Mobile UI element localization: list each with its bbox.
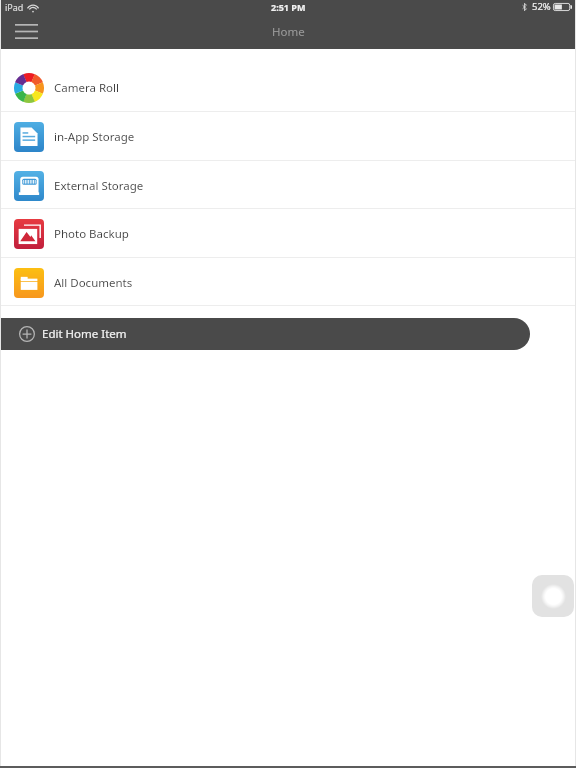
button[interactable]: in-App Storage	[0, 112, 576, 161]
staticText: External Storage	[54, 178, 144, 194]
staticText: in-App Storage	[54, 129, 135, 145]
button[interactable]: AssistiveTouch	[532, 575, 574, 617]
button[interactable]: All Documents	[0, 258, 576, 307]
staticText: Edit Home Item	[42, 326, 127, 342]
staticText: 52%	[532, 0, 551, 13]
button[interactable]: Photo Backup	[0, 209, 576, 258]
button[interactable]: Camera Roll	[0, 63, 576, 112]
button[interactable]: Edit Home Item	[0, 318, 530, 350]
button[interactable]: Menu	[4, 16, 49, 46]
staticText: 2:51 PM	[271, 1, 306, 13]
staticText: Camera Roll	[54, 80, 119, 96]
staticText: Photo Backup	[54, 226, 129, 242]
staticText: All Documents	[54, 275, 133, 291]
button[interactable]: External Storage	[0, 161, 576, 210]
staticText: Home	[272, 24, 305, 40]
staticText: iPad	[5, 1, 24, 13]
